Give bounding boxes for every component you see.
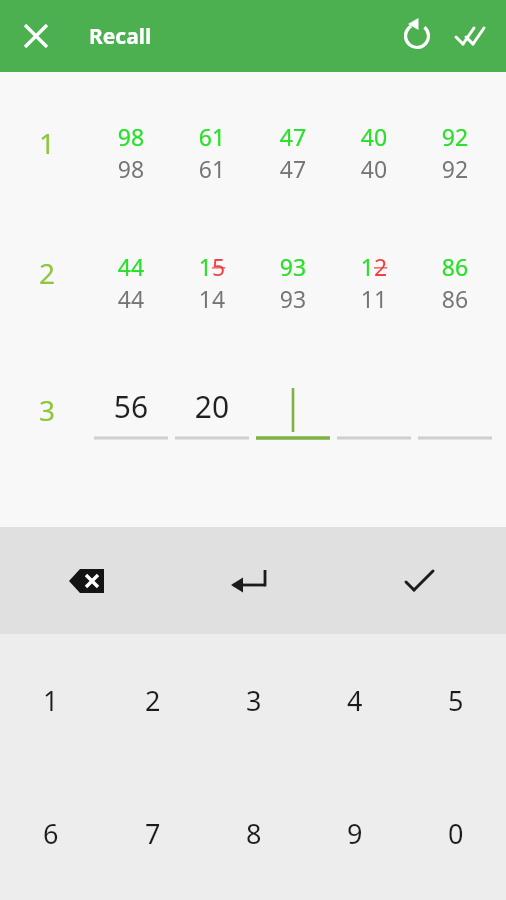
staticText: 56 xyxy=(88,386,174,427)
button[interactable] xyxy=(331,383,417,443)
button[interactable]: 56 xyxy=(88,383,174,443)
staticText: 92 xyxy=(412,153,498,184)
staticText: 14 xyxy=(169,283,255,314)
button[interactable]: 2 xyxy=(102,634,203,767)
button[interactable]: Close xyxy=(11,11,61,61)
button[interactable]: Submit all xyxy=(449,11,499,61)
staticText: 98 xyxy=(88,121,174,152)
staticText: 86 xyxy=(412,283,498,314)
staticText: 61 xyxy=(169,153,255,184)
staticText: 44 xyxy=(88,283,174,314)
staticText xyxy=(250,386,336,427)
staticText: 20 xyxy=(169,386,255,427)
staticText: 9 xyxy=(347,815,363,852)
button[interactable]: 5 xyxy=(405,634,506,767)
button[interactable]: Confirm xyxy=(375,555,463,607)
staticText: 1 xyxy=(39,124,56,162)
staticText: 5 xyxy=(448,682,464,719)
button[interactable]: 3 xyxy=(203,634,304,767)
staticText: 2 xyxy=(39,254,56,292)
staticText: 47 xyxy=(250,121,336,152)
staticText: 11 xyxy=(331,283,417,314)
button[interactable]: 9 xyxy=(304,767,405,900)
staticText: 40 xyxy=(331,153,417,184)
staticText: 2 xyxy=(145,682,161,719)
button[interactable]: Enter xyxy=(206,555,294,607)
button[interactable]: 7 xyxy=(102,767,203,900)
button[interactable]: Restart xyxy=(392,11,442,61)
button[interactable] xyxy=(412,383,498,443)
staticText: 3 xyxy=(39,391,56,429)
staticText: 3 xyxy=(246,682,262,719)
button[interactable]: 20 xyxy=(169,383,255,443)
staticText: 8 xyxy=(246,815,262,852)
staticText: 0 xyxy=(448,815,464,852)
staticText: 12 xyxy=(331,251,417,282)
staticText: 98 xyxy=(88,153,174,184)
staticText: 86 xyxy=(412,251,498,282)
staticText: 40 xyxy=(331,121,417,152)
staticText: 44 xyxy=(88,251,174,282)
button[interactable]: 6 xyxy=(0,767,102,900)
staticText: 93 xyxy=(250,251,336,282)
staticText: Recall xyxy=(89,22,152,51)
button[interactable]: Backspace xyxy=(43,555,131,607)
staticText: 61 xyxy=(169,121,255,152)
staticText: 4 xyxy=(347,682,363,719)
staticText: 15 xyxy=(169,251,255,282)
staticText: 6 xyxy=(43,815,59,852)
button[interactable]: 8 xyxy=(203,767,304,900)
staticText: 92 xyxy=(412,121,498,152)
staticText: 7 xyxy=(145,815,161,852)
staticText: 47 xyxy=(250,153,336,184)
button[interactable]: 1 xyxy=(0,634,102,767)
staticText: 1 xyxy=(43,682,59,719)
button[interactable]: 4 xyxy=(304,634,405,767)
button[interactable] xyxy=(250,383,336,443)
button[interactable]: 0 xyxy=(405,767,506,900)
staticText: 93 xyxy=(250,283,336,314)
